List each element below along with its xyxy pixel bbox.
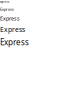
staticText: Express [0,6,14,12]
staticText: Express [0,37,29,47]
staticText: Express [0,0,9,3]
staticText: Express [0,15,20,22]
staticText: Express [0,25,25,34]
